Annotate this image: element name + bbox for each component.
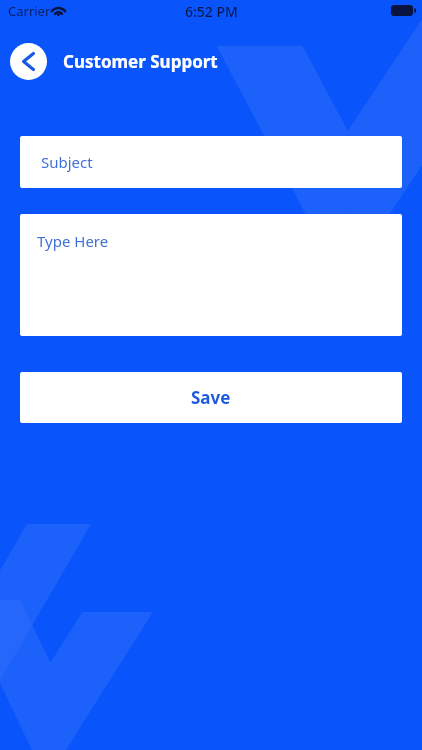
staticText: Save [191,386,231,409]
staticText: Subject [41,152,93,172]
staticText: Type Here [37,231,109,251]
button[interactable]: Subject [20,136,402,188]
button[interactable]: Save [20,372,402,423]
button[interactable]: Back [10,43,47,80]
staticText: Customer Support [63,50,218,73]
button[interactable]: Type Here [20,214,402,336]
staticText: 6:52 PM [185,2,238,21]
staticText: Carrier [8,2,51,20]
